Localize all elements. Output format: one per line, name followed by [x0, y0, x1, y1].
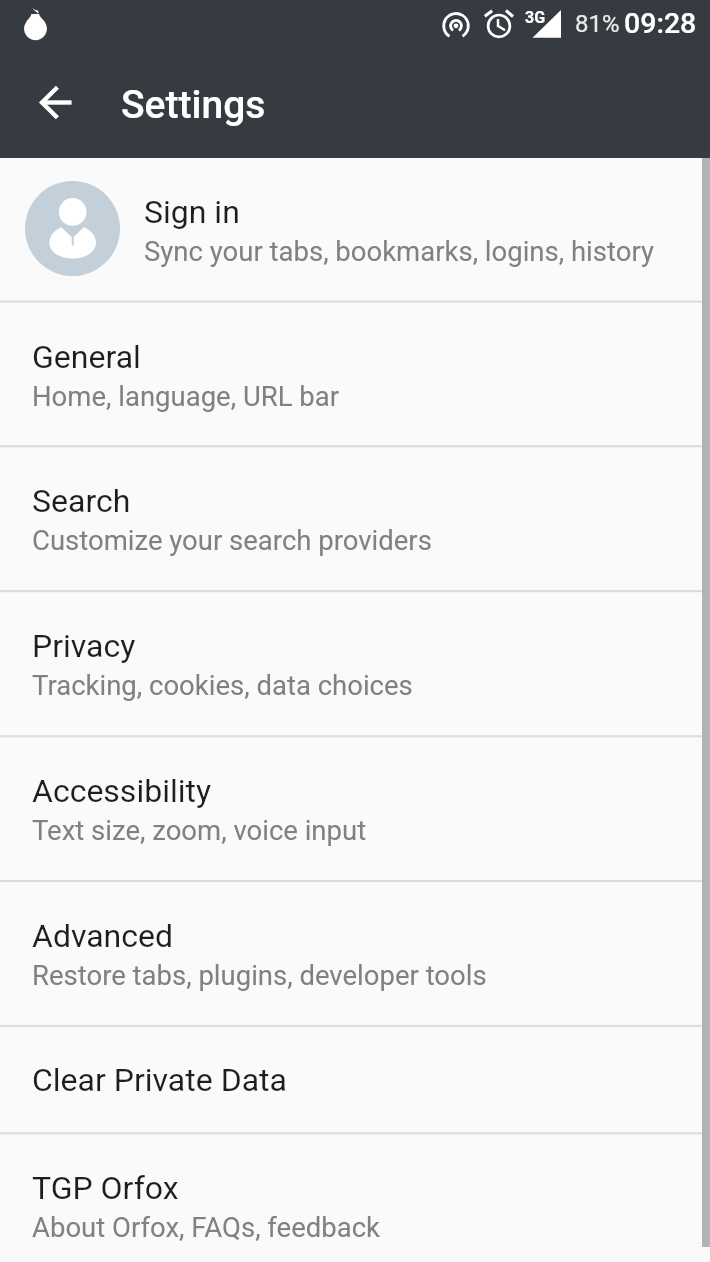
button[interactable]: Accessibility — [0, 737, 710, 880]
staticText: Privacy — [32, 627, 136, 665]
button[interactable]: Privacy — [0, 592, 710, 736]
button[interactable]: Navigate up — [0, 55, 103, 158]
button[interactable]: Advanced — [0, 882, 710, 1025]
staticText: 3G — [525, 8, 546, 27]
button[interactable]: TGP Orfox — [0, 1134, 710, 1262]
staticText: Clear Private Data — [32, 1061, 287, 1099]
button[interactable]: General — [0, 303, 710, 446]
staticText: Sign in — [144, 193, 240, 231]
staticText: Customize your search providers — [32, 524, 432, 556]
staticText: Search — [32, 482, 131, 520]
staticText: Text size, zoom, voice input — [32, 814, 367, 846]
button[interactable]: Sign in — [0, 158, 710, 302]
staticText: Sync your tabs, bookmarks, logins, histo… — [144, 235, 654, 267]
staticText: Tracking, cookies, data choices — [32, 669, 413, 701]
staticText: TGP Orfox — [32, 1169, 179, 1207]
staticText: Advanced — [32, 917, 174, 955]
staticText: About Orfox, FAQs, feedback — [32, 1211, 381, 1243]
button[interactable]: Clear Private Data — [0, 1027, 710, 1133]
staticText: Restore tabs, plugins, developer tools — [32, 959, 487, 991]
staticText: General — [32, 338, 141, 376]
staticText: Accessibility — [32, 772, 212, 810]
staticText: Settings — [121, 82, 266, 128]
staticText: Home, language, URL bar — [32, 380, 340, 412]
staticText: 09:28 — [624, 7, 697, 40]
button[interactable]: Search — [0, 447, 710, 590]
staticText: 81% — [575, 10, 620, 38]
